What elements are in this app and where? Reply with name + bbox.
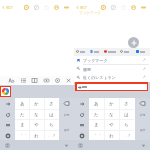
button[interactable]: Toolbar action xyxy=(108,3,118,12)
staticText: た xyxy=(20,112,25,117)
staticText: さ xyxy=(49,101,54,106)
staticText: あ xyxy=(94,101,99,106)
button[interactable]: あ xyxy=(15,98,30,109)
staticText: わ xyxy=(34,133,39,138)
staticText: か xyxy=(109,101,114,106)
button[interactable]: や xyxy=(104,119,119,130)
button[interactable]: Hide keyboard xyxy=(63,142,70,149)
staticText: た xyxy=(94,112,99,117)
button[interactable]: Toolbar action xyxy=(51,3,61,12)
button[interactable]: Bookmark xyxy=(90,49,103,55)
button[interactable] xyxy=(74,65,150,74)
staticText: は xyxy=(49,112,54,117)
button[interactable]: Format tool xyxy=(65,77,72,84)
button[interactable]: Toolbar action xyxy=(128,3,138,12)
staticText: 記号 xyxy=(64,113,70,117)
staticText: あ xyxy=(20,101,25,106)
button[interactable]: Bookmark xyxy=(136,49,149,55)
button[interactable]: Toolbar action xyxy=(138,3,148,12)
button[interactable]: Format tool xyxy=(54,77,61,84)
button[interactable]: 記号 xyxy=(135,109,150,120)
button[interactable]: ま xyxy=(15,119,30,130)
button[interactable]: Switch to ABC xyxy=(0,119,15,130)
button[interactable]: さ xyxy=(44,98,59,109)
button[interactable]: Undo xyxy=(0,109,15,120)
staticText: 完了 xyxy=(6,6,14,11)
button[interactable]: Format tool xyxy=(20,77,27,84)
button[interactable]: た xyxy=(89,109,104,120)
staticText: 改行 xyxy=(64,128,70,132)
staticText: 完了 xyxy=(80,6,88,11)
button[interactable]: ら xyxy=(119,119,134,130)
staticText: わ xyxy=(109,133,114,138)
staticText: さ xyxy=(124,101,129,106)
button[interactable] xyxy=(0,76,74,85)
button[interactable]: Google search xyxy=(0,86,11,97)
button[interactable]: Format tool xyxy=(8,77,15,84)
button[interactable]: ゛゜ xyxy=(89,130,104,141)
button[interactable]: Switch to ABC xyxy=(74,119,89,130)
button[interactable]: Back xyxy=(1,4,13,12)
button[interactable]: Format tool xyxy=(43,77,50,84)
button[interactable]: ゛゜ xyxy=(15,130,30,141)
staticText: や xyxy=(109,122,114,127)
button[interactable]: わ xyxy=(104,130,119,141)
button[interactable]: Undo xyxy=(74,109,89,120)
staticText: は xyxy=(124,112,129,117)
staticText: ま xyxy=(20,122,25,127)
button[interactable]: Toolbar action xyxy=(21,3,31,12)
button[interactable]: Add bookmark xyxy=(128,37,139,48)
button[interactable]: Back xyxy=(75,4,87,12)
button[interactable]: Settings xyxy=(74,130,89,141)
button[interactable]: 改行 xyxy=(135,119,150,140)
button[interactable]: Bookmark xyxy=(120,49,133,55)
button[interactable]: は xyxy=(119,109,134,120)
button[interactable]: か xyxy=(104,98,119,109)
button[interactable]: 、。? xyxy=(119,130,134,141)
button[interactable]: Toolbar action xyxy=(118,3,128,12)
button[interactable]: ら xyxy=(44,119,59,130)
staticText: な xyxy=(109,112,114,117)
button[interactable] xyxy=(74,73,150,82)
button[interactable]: Format tool xyxy=(31,77,38,84)
staticText: ブックマーク xyxy=(83,58,108,63)
button[interactable]: 改行 xyxy=(59,119,74,140)
button[interactable]: Bookmark xyxy=(76,49,89,55)
button[interactable]: か xyxy=(29,98,44,109)
button[interactable]: や xyxy=(29,119,44,130)
staticText: ゛゜ xyxy=(92,133,101,138)
staticText: ま xyxy=(94,122,99,127)
button[interactable]: Next candidate xyxy=(74,98,89,109)
staticText: ら xyxy=(49,122,54,127)
button[interactable]: 記号 xyxy=(59,109,74,120)
button[interactable] xyxy=(74,56,150,65)
button[interactable]: Bookmark xyxy=(104,49,117,55)
button[interactable] xyxy=(75,82,148,91)
button[interactable]: Next candidate xyxy=(0,98,15,109)
button[interactable]: Hide keyboard xyxy=(140,142,147,149)
button[interactable]: な xyxy=(104,109,119,120)
button[interactable]: は xyxy=(44,109,59,120)
button[interactable]: Change keyboard language xyxy=(4,142,11,149)
button[interactable]: Toolbar action xyxy=(41,3,51,12)
staticText: 履歴 xyxy=(83,67,91,72)
button[interactable]: Backspace xyxy=(135,98,150,109)
staticText: ブックマーク xyxy=(79,11,101,16)
staticText: な xyxy=(34,112,39,117)
button[interactable]: Backspace xyxy=(59,98,74,109)
button[interactable]: あ xyxy=(89,98,104,109)
button[interactable]: さ xyxy=(119,98,134,109)
staticText: 記号 xyxy=(140,113,146,117)
button[interactable]: Toolbar action xyxy=(98,3,108,12)
staticText: ら xyxy=(124,122,129,127)
staticText: か xyxy=(34,101,39,106)
button[interactable]: Toolbar action xyxy=(31,3,41,12)
button[interactable]: Settings xyxy=(0,130,15,141)
button[interactable]: た xyxy=(15,109,30,120)
button[interactable]: な xyxy=(29,109,44,120)
button[interactable]: わ xyxy=(29,130,44,141)
button[interactable]: ま xyxy=(89,119,104,130)
button[interactable]: Change keyboard language xyxy=(77,142,84,149)
button[interactable]: Toolbar action xyxy=(61,3,71,12)
button[interactable]: 、。? xyxy=(44,130,59,141)
